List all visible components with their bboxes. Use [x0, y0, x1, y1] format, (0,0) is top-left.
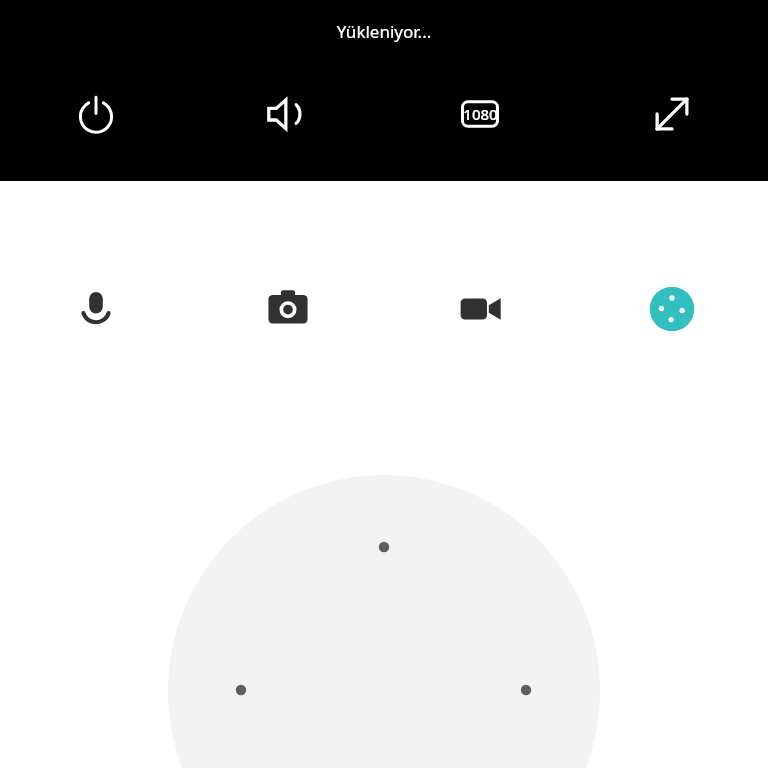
staticText: Yükleniyor... [0, 20, 768, 43]
button[interactable]: Take photo [259, 280, 317, 338]
staticText: 1080 [463, 104, 498, 124]
button[interactable]: Resolution 1080 [451, 85, 509, 143]
button[interactable]: Effects [643, 280, 701, 338]
button[interactable]: Record video [451, 280, 509, 338]
button[interactable]: Volume [259, 85, 317, 143]
button[interactable]: Power [67, 85, 125, 143]
button[interactable]: Microphone [67, 280, 125, 338]
button[interactable]: Fullscreen [643, 85, 701, 143]
